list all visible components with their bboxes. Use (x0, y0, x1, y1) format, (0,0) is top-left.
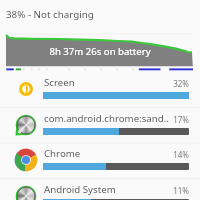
staticText: 17% (160, 114, 189, 125)
button[interactable]: Android System (0, 179, 200, 200)
staticText: 38% - Not charging (6, 8, 94, 21)
staticText: 8h 37m 26s on battery (0, 45, 200, 58)
button[interactable]: Chrome (0, 143, 200, 178)
staticText: com.android.chrome:sand.. (44, 112, 172, 125)
button[interactable]: com.android.chrome:sand.. (0, 108, 200, 143)
staticText: Android System (44, 183, 172, 196)
staticText: 32% (160, 78, 189, 89)
staticText: 11% (160, 185, 189, 196)
staticText: Screen (44, 76, 172, 89)
button[interactable]: Screen (0, 72, 200, 107)
staticText: 14% (160, 149, 189, 160)
staticText: Chrome (44, 147, 172, 160)
